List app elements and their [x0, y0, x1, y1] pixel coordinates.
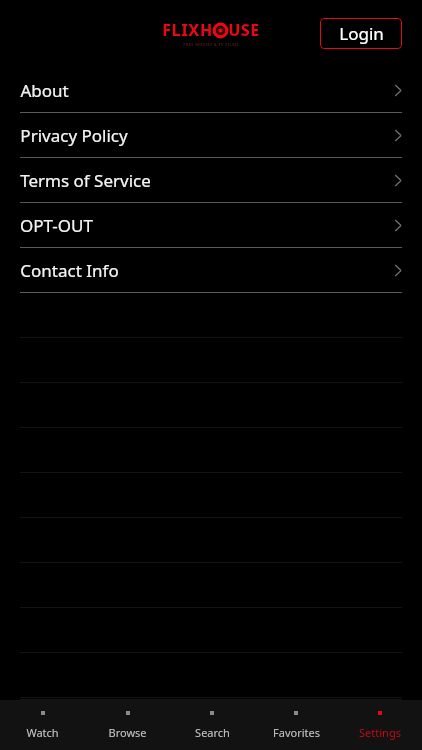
staticText: USE	[228, 19, 260, 41]
staticText: Browse	[108, 725, 147, 740]
staticText: FLIXH	[162, 19, 213, 41]
staticText: Terms of Service	[20, 169, 151, 192]
button[interactable]: Watch	[0, 700, 85, 750]
staticText: Settings	[359, 725, 401, 740]
button[interactable]: Search	[170, 700, 254, 750]
staticText: Watch	[26, 725, 59, 740]
button[interactable]: Login	[320, 18, 402, 49]
staticText: Search	[195, 725, 230, 740]
button[interactable]: Browse	[85, 700, 170, 750]
button[interactable]: Privacy Policy	[0, 113, 422, 158]
button[interactable]: Settings	[338, 700, 422, 750]
staticText: Login	[339, 22, 384, 45]
staticText: FREE MOVIES & TV FILMS	[183, 42, 239, 47]
staticText: Privacy Policy	[20, 124, 128, 147]
button[interactable]: Contact Info	[0, 248, 422, 293]
staticText: Contact Info	[20, 259, 119, 282]
button[interactable]: OPT-OUT	[0, 203, 422, 248]
button[interactable]: Terms of Service	[0, 158, 422, 203]
staticText: About	[20, 79, 69, 102]
button[interactable]: About	[0, 68, 422, 113]
staticText: OPT-OUT	[20, 214, 93, 237]
button[interactable]: FlixHouse logo	[162, 19, 260, 47]
staticText: Favorites	[273, 725, 320, 740]
button[interactable]: Favorites	[254, 700, 338, 750]
